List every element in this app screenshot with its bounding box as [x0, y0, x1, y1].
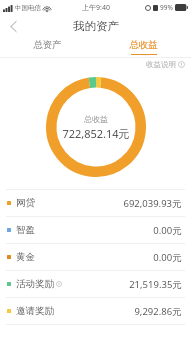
staticText: 上午9:40: [82, 3, 110, 13]
staticText: 692,039.93元: [123, 197, 182, 210]
staticText: 我的资产: [73, 19, 119, 33]
staticText: 9,292.86元: [134, 305, 182, 318]
staticText: 99%: [160, 3, 173, 12]
staticText: 总资产: [33, 39, 62, 51]
button[interactable]: Back: [0, 15, 26, 37]
staticText: 智盈: [16, 224, 35, 236]
button[interactable]: 黄金: [0, 244, 191, 270]
button[interactable]: 邀请奖励: [0, 298, 191, 324]
staticText: 黄金: [16, 251, 35, 263]
button[interactable]: 网贷: [0, 190, 191, 216]
button[interactable]: 智盈: [0, 217, 191, 243]
button[interactable]: 活动奖励: [0, 271, 191, 297]
staticText: 活动奖励: [16, 278, 54, 290]
staticText: 中国电信: [15, 4, 41, 12]
staticText: 总收益: [129, 39, 158, 51]
staticText: 722,852.14元: [62, 126, 130, 141]
staticText: 总收益: [84, 114, 108, 124]
staticText: 网贷: [16, 197, 35, 209]
staticText: 0.00元: [153, 224, 182, 237]
staticText: 0.00元: [153, 251, 182, 264]
staticText: 收益说明: [146, 60, 176, 69]
button[interactable]: 总资产: [0, 37, 95, 57]
button[interactable]: 总收益: [95, 37, 191, 57]
staticText: 邀请奖励: [16, 305, 54, 317]
button[interactable]: 收益说明: [146, 60, 185, 69]
staticText: 21,519.35元: [129, 278, 182, 291]
